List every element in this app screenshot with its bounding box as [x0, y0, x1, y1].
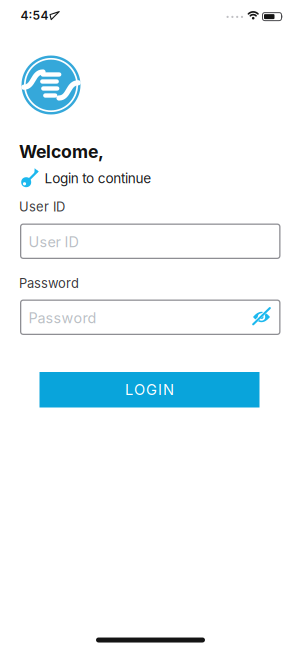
staticText: LOGIN: [125, 381, 174, 399]
staticText: User ID: [28, 233, 78, 251]
staticText: Welcome,: [19, 141, 104, 162]
button[interactable]: Password: [20, 299, 280, 335]
button[interactable]: [246, 302, 276, 332]
staticText: Password: [28, 309, 96, 327]
button[interactable]: LOGIN: [39, 372, 259, 407]
button[interactable]: User ID: [20, 223, 280, 259]
staticText: Login to continue: [44, 170, 151, 186]
staticText: 4:54: [20, 8, 48, 22]
staticText: Password: [19, 275, 79, 291]
staticText: User ID: [19, 199, 65, 215]
